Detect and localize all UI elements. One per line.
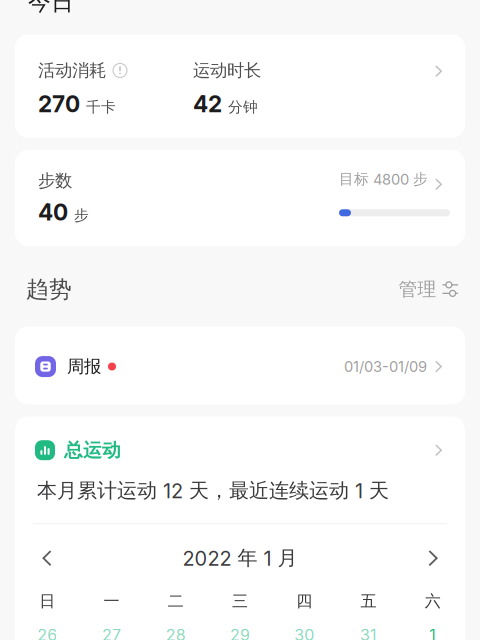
staticText: 管理 — [398, 278, 436, 301]
button[interactable]: 下个月 — [409, 544, 457, 572]
button[interactable]: 管理 — [398, 278, 458, 301]
staticText: 40 — [38, 199, 68, 226]
staticText: 本月累计运动 12 天，最近连续运动 1 天 — [37, 478, 389, 503]
staticText: 今日 — [28, 0, 74, 17]
staticText: 31 — [360, 625, 377, 640]
staticText: 1 — [429, 625, 436, 640]
staticText: 四 — [296, 591, 312, 611]
button[interactable]: 步数 — [15, 150, 465, 246]
staticText: 活动消耗 — [38, 60, 106, 81]
staticText: 27 — [102, 625, 121, 640]
staticText: 01/03-01/09 — [344, 358, 427, 375]
staticText: 42 — [193, 90, 222, 118]
staticText: 30 — [294, 625, 314, 640]
staticText: 29 — [230, 625, 250, 640]
staticText: 总运动 — [64, 438, 121, 462]
staticText: 2022 年 1 月 — [182, 546, 297, 571]
staticText: 周报 — [67, 356, 101, 377]
staticText: 运动时长 — [193, 60, 261, 81]
staticText: 目标 4800 步 — [339, 170, 428, 188]
staticText: 步 — [74, 206, 89, 225]
staticText: 分钟 — [228, 98, 258, 116]
staticText: 日 — [39, 591, 55, 611]
staticText: 三 — [232, 591, 248, 611]
button[interactable]: 周报 — [15, 327, 465, 404]
staticText: 一 — [103, 591, 119, 611]
staticText: 二 — [168, 591, 184, 611]
staticText: 270 — [38, 90, 80, 118]
staticText: 趋势 — [26, 275, 72, 304]
button[interactable]: 总运动 — [15, 416, 465, 462]
staticText: 六 — [425, 591, 441, 611]
staticText: 26 — [37, 625, 57, 640]
staticText: 28 — [166, 625, 186, 640]
button[interactable]: 上个月 — [23, 544, 71, 572]
staticText: 千卡 — [86, 98, 116, 116]
button[interactable]: 活动消耗 — [15, 35, 465, 138]
staticText: 步数 — [38, 170, 72, 192]
staticText: 五 — [361, 591, 377, 611]
